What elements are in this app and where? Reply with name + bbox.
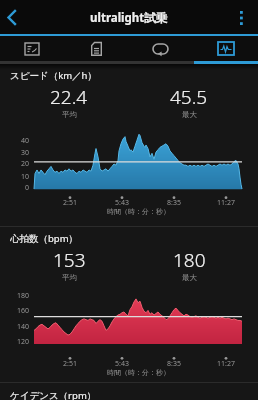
staticText: スピード（km／h）	[10, 69, 97, 82]
staticText: 180	[17, 291, 30, 301]
staticText: 5:43	[115, 198, 129, 208]
staticText: 20	[21, 159, 30, 169]
staticText: 160	[17, 306, 30, 316]
staticText: 40	[21, 136, 30, 146]
button[interactable]	[64, 36, 128, 61]
staticText: 2:51	[63, 198, 77, 208]
staticText: 10	[21, 172, 30, 182]
staticText: 180	[173, 247, 206, 273]
staticText: 120	[17, 337, 30, 347]
button[interactable]	[224, 1, 258, 34]
staticText: 最大	[182, 110, 197, 119]
staticText: 30	[21, 148, 30, 158]
staticText: 平均	[62, 110, 77, 119]
staticText: ultralight試乗	[90, 10, 168, 26]
staticText: 2:51	[63, 359, 77, 369]
staticText: 時間（時：分：秒）	[107, 368, 170, 377]
staticText: 最大	[182, 273, 197, 282]
staticText: 45.5	[170, 84, 208, 110]
staticText: 0	[25, 183, 30, 193]
button[interactable]	[128, 36, 193, 61]
staticText: 平均	[62, 273, 77, 282]
button[interactable]	[193, 36, 258, 61]
staticText: 5:43	[115, 359, 129, 369]
staticText: ケイデンス（rpm）	[10, 389, 97, 400]
staticText: 心拍数（bpm）	[10, 232, 79, 245]
staticText: 時間（時：分：秒）	[107, 207, 170, 216]
staticText: 22.4	[50, 84, 88, 110]
staticText: 8:35	[167, 359, 181, 369]
staticText: 153	[53, 247, 86, 273]
staticText: 8:35	[167, 198, 181, 208]
button[interactable]	[0, 1, 24, 34]
staticText: 11:27	[217, 198, 235, 208]
staticText: 140	[17, 322, 30, 332]
staticText: 11:27	[217, 359, 235, 369]
button[interactable]	[0, 36, 64, 61]
